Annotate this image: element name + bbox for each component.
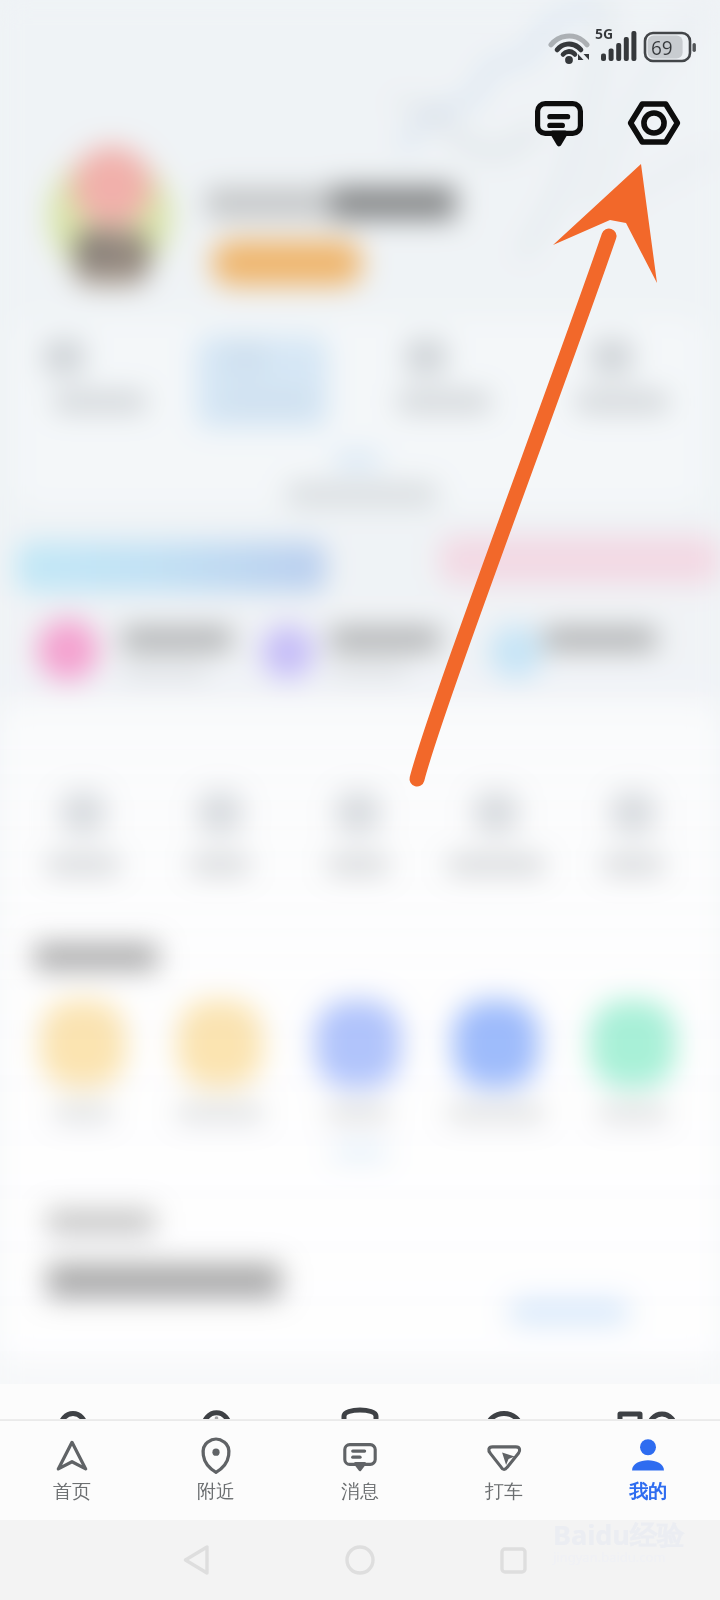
button[interactable]: Settings xyxy=(624,93,684,153)
staticText: 打车 xyxy=(485,1480,523,1504)
button[interactable]: Home xyxy=(334,1534,386,1586)
button[interactable]: 附近 xyxy=(144,1421,288,1520)
button[interactable]: 首页 xyxy=(0,1421,144,1520)
staticText: 我的 xyxy=(629,1480,667,1504)
staticText: Baidu经验 xyxy=(553,1516,684,1553)
staticText: 69 xyxy=(651,35,673,61)
staticText: 首页 xyxy=(53,1480,91,1504)
staticText: 附近 xyxy=(197,1480,235,1504)
button[interactable]: 消息 xyxy=(288,1421,432,1520)
staticText: 消息 xyxy=(341,1480,379,1504)
button[interactable]: Messages xyxy=(529,94,589,154)
button[interactable]: Back xyxy=(172,1534,224,1586)
staticText: 5G xyxy=(595,24,614,43)
button[interactable]: Recents xyxy=(487,1534,539,1586)
button[interactable]: 我的 xyxy=(576,1421,720,1520)
button[interactable]: 打车 xyxy=(432,1421,576,1520)
